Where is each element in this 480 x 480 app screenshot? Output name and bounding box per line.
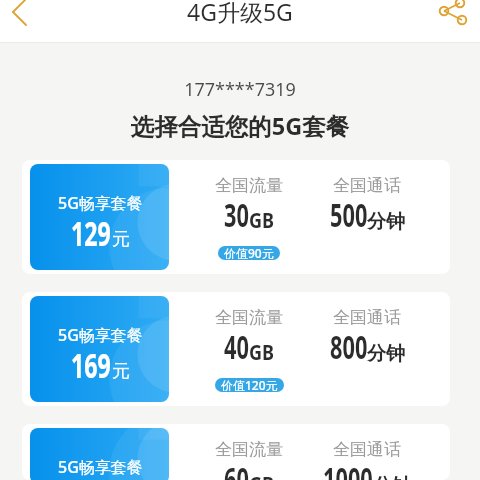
staticText: GB — [249, 468, 274, 480]
staticText: 800 — [330, 325, 367, 369]
button[interactable]: Back — [0, 0, 40, 40]
staticText: 60 — [224, 457, 249, 480]
staticText: 元 — [112, 228, 130, 251]
staticText: 4G升级5G — [187, 0, 293, 27]
staticText: 1000 — [323, 457, 373, 480]
staticText: 全国通话 — [333, 439, 401, 460]
staticText: 全国通话 — [333, 307, 401, 328]
staticText: 500 — [330, 193, 367, 237]
staticText: GB — [249, 336, 274, 366]
staticText: GB — [249, 204, 274, 234]
staticText: 分钟 — [367, 210, 405, 234]
staticText: 199 — [71, 474, 111, 480]
button[interactable]: Share — [436, 0, 480, 43]
staticText: 129 — [71, 210, 111, 256]
staticText: 5G畅享套餐 — [58, 324, 143, 346]
staticText: 元 — [112, 360, 130, 383]
staticText: 5G畅享套餐 — [58, 456, 143, 478]
staticText: 169 — [71, 342, 111, 388]
staticText: 全国流量 — [215, 175, 283, 196]
staticText: 全国流量 — [215, 307, 283, 328]
staticText: 分钟 — [373, 474, 411, 480]
staticText: 价值90元 — [224, 246, 274, 259]
staticText: 选择合适您的5G套餐 — [0, 110, 480, 142]
staticText: 价值120元 — [221, 378, 278, 391]
staticText: 分钟 — [367, 342, 405, 366]
staticText: 177****7319 — [0, 77, 480, 102]
staticText: 全国流量 — [215, 439, 283, 460]
button[interactable]: 5G畅享套餐 — [22, 292, 450, 406]
staticText: 40 — [224, 325, 249, 369]
staticText: 全国通话 — [333, 175, 401, 196]
staticText: 5G畅享套餐 — [58, 192, 143, 214]
button[interactable]: 5G畅享套餐 — [22, 424, 450, 480]
staticText: 30 — [224, 193, 249, 237]
button[interactable]: 5G畅享套餐 — [22, 160, 450, 274]
